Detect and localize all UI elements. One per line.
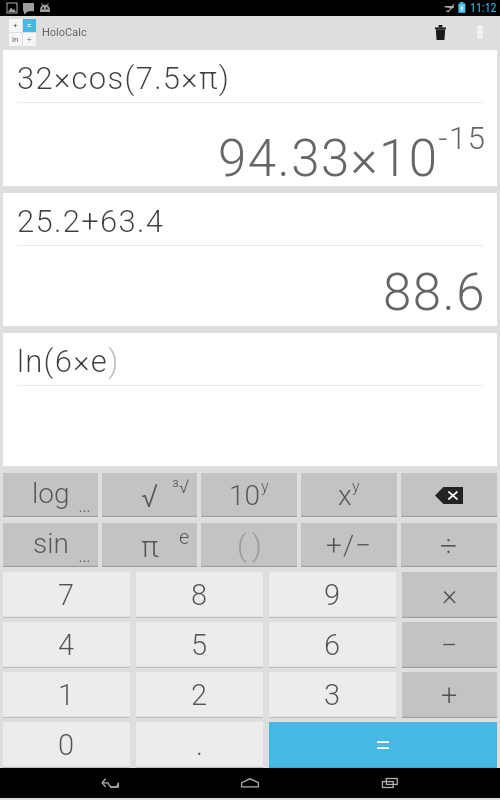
button[interactable]: log <box>3 473 98 517</box>
button[interactable]: Back <box>80 768 140 798</box>
staticText: … <box>78 493 91 516</box>
button[interactable]: Recent apps <box>360 768 420 798</box>
button[interactable]: +/− <box>301 523 397 567</box>
button[interactable]: Home <box>220 768 280 798</box>
button[interactable]: ln(6×e) <box>3 333 497 466</box>
staticText: 9 <box>324 578 341 612</box>
button[interactable]: ÷ <box>401 523 497 567</box>
button[interactable]: 4 <box>3 622 130 668</box>
staticText: 4 <box>58 628 75 662</box>
staticText: ( ) <box>237 528 261 563</box>
staticText: 2 <box>191 678 208 712</box>
staticText: 32×cos(7.5×π) <box>17 60 231 96</box>
button[interactable]: 10 <box>201 473 297 517</box>
staticText: y <box>352 477 360 496</box>
staticText: ln(6×e) <box>17 343 120 379</box>
staticText: = <box>27 21 32 30</box>
staticText: 6 <box>324 628 341 662</box>
button[interactable]: More options <box>466 16 498 48</box>
button[interactable]: √ <box>102 473 197 517</box>
staticText: + <box>13 21 18 30</box>
staticText: + <box>441 678 458 712</box>
staticText: ³√ <box>172 475 190 497</box>
staticText: π <box>141 529 159 564</box>
staticText: × <box>442 578 458 612</box>
button[interactable]: sin <box>3 523 98 567</box>
staticText: 0 <box>58 728 75 762</box>
staticText: sin <box>33 527 69 560</box>
button[interactable]: 5 <box>136 622 263 668</box>
staticText: √ <box>141 477 159 515</box>
staticText: ÷ <box>27 35 32 44</box>
button[interactable]: × <box>402 572 497 618</box>
button[interactable]: + <box>402 672 497 718</box>
staticText: 94.33×10-15 <box>218 120 487 189</box>
button[interactable]: π <box>102 523 197 567</box>
button[interactable]: Backspace <box>401 473 497 517</box>
staticText: 1 <box>58 678 75 712</box>
staticText: 5 <box>191 628 208 662</box>
button[interactable]: 8 <box>136 572 263 618</box>
button[interactable]: x <box>301 473 397 517</box>
button[interactable]: 0 <box>3 722 130 768</box>
button[interactable]: − <box>402 622 497 668</box>
button[interactable]: 2 <box>136 672 263 718</box>
staticText: HoloCalc <box>42 26 87 39</box>
button[interactable]: 1 <box>3 672 130 718</box>
staticText: … <box>78 543 91 566</box>
button[interactable]: 6 <box>269 622 396 668</box>
button[interactable]: 25.2+63.4 <box>3 193 497 326</box>
staticText: ln <box>12 35 19 44</box>
staticText: 10 <box>229 479 261 512</box>
staticText: 7 <box>58 578 75 612</box>
button[interactable]: 7 <box>3 572 130 618</box>
button[interactable]: ( ) <box>201 523 297 567</box>
staticText: 11:12 <box>470 1 497 15</box>
staticText: e <box>179 525 190 548</box>
staticText: +/− <box>326 529 373 562</box>
staticText: 25.2+63.4 <box>17 203 165 239</box>
staticText: x <box>338 479 352 512</box>
button[interactable]: 3 <box>269 672 396 718</box>
staticText: = <box>375 728 392 762</box>
button[interactable]: = <box>269 722 497 768</box>
staticText: 8 <box>191 578 208 612</box>
staticText: 3 <box>324 678 341 712</box>
staticText: − <box>441 628 458 662</box>
button[interactable]: . <box>136 722 263 768</box>
staticText: y <box>261 477 269 496</box>
staticText: ÷ <box>440 528 458 563</box>
staticText: log <box>32 477 70 510</box>
staticText: . <box>196 728 203 762</box>
button[interactable]: 32×cos(7.5×π) <box>3 50 497 186</box>
button[interactable]: Delete history <box>422 16 466 48</box>
staticText: 88.6 <box>383 263 487 323</box>
button[interactable]: 9 <box>269 572 396 618</box>
